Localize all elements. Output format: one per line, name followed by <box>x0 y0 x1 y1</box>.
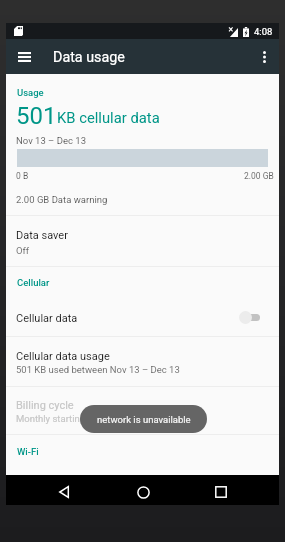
button[interactable]: Home <box>123 477 163 507</box>
button[interactable]: Open navigation menu <box>6 39 42 74</box>
staticText: 2.00 GB Data warning <box>16 194 108 205</box>
staticText: Monthly starting <box>16 413 86 424</box>
staticText: 2.00 GB <box>244 171 274 181</box>
staticText: 0 B <box>16 171 29 181</box>
staticText: 501 KB used between Nov 13 – Dec 13 <box>16 364 180 375</box>
button[interactable] <box>6 385 279 433</box>
staticText: Data saver <box>16 229 68 242</box>
button[interactable] <box>6 215 279 265</box>
staticText: Cellular <box>17 277 50 288</box>
staticText: Usage <box>17 87 44 98</box>
staticText: Billing cycle <box>16 399 74 412</box>
button[interactable] <box>6 335 279 385</box>
staticText: Cellular data <box>16 312 78 325</box>
button[interactable]: More options <box>246 39 282 74</box>
staticText: 501 <box>16 102 57 130</box>
staticText: Wi‑Fi <box>17 446 39 457</box>
staticText: Data usage <box>53 49 125 66</box>
staticText: KB cellular data <box>57 109 160 126</box>
staticText: Off <box>16 245 30 256</box>
staticText: Cellular data usage <box>16 350 110 363</box>
staticText: network is unavailable <box>97 414 191 425</box>
staticText: 4:08 <box>254 26 273 37</box>
button[interactable] <box>6 299 279 335</box>
button[interactable]: Back <box>44 477 84 507</box>
staticText: Nov 13 – Dec 13 <box>16 135 86 146</box>
button[interactable]: Recent apps <box>201 477 241 507</box>
